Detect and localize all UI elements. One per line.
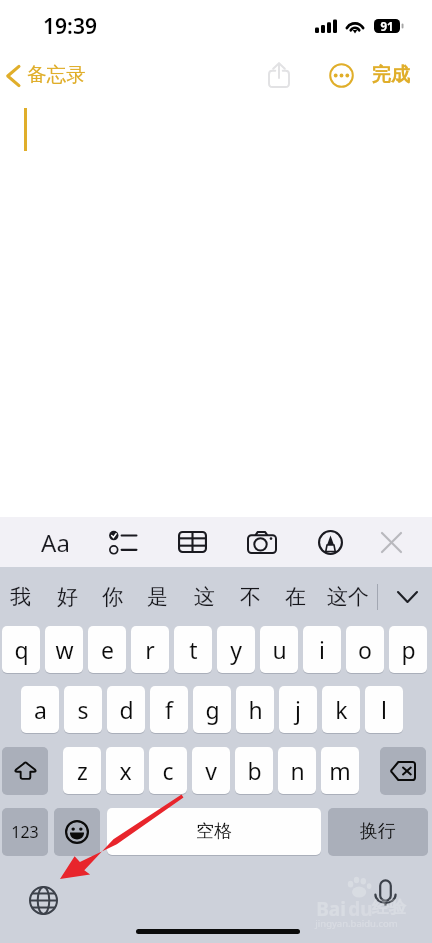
button[interactable]: y [217,626,255,673]
staticText: s [77,694,89,725]
button[interactable]: 完成 [372,55,410,95]
staticText: b [247,755,262,786]
button[interactable]: Globe [23,880,63,920]
button[interactable]: x [106,747,144,794]
staticText: 空格 [196,820,232,843]
button[interactable]: Share [262,58,296,92]
button[interactable]: r [131,626,169,673]
staticText: Aa [41,526,70,559]
button[interactable]: Shift [2,747,48,794]
staticText: du [348,896,373,922]
staticText: h [248,694,263,725]
staticText: 完成 [372,63,410,87]
staticText: d [119,694,134,725]
staticText: v [205,755,217,786]
button[interactable]: n [278,747,316,794]
button[interactable]: 空格 [107,808,321,855]
staticText: w [55,634,74,665]
staticText: 19:39 [43,12,97,41]
staticText: 91 [380,19,394,33]
staticText: 换行 [360,820,396,843]
button[interactable]: Close [367,518,415,566]
staticText: a [34,694,47,725]
button[interactable]: b [235,747,273,794]
button[interactable]: 123 [2,808,48,855]
button[interactable]: k [322,686,360,733]
button[interactable]: 是 [138,575,176,619]
button[interactable]: o [346,626,384,673]
staticText: u [272,634,287,665]
staticText: y [230,634,242,665]
staticText: 不 [240,584,261,610]
staticText: 在 [285,584,306,610]
staticText: jingyan.baidu.com [315,917,398,930]
staticText: 经验 [372,897,406,918]
button[interactable]: Aa [31,518,79,566]
button[interactable]: 在 [276,575,314,619]
button[interactable]: Emoji [54,808,100,855]
button[interactable]: z [63,747,101,794]
staticText: 你 [102,584,123,610]
button[interactable]: t [174,626,212,673]
button[interactable]: u [260,626,298,673]
staticText: p [401,634,416,665]
staticText: o [358,634,372,665]
staticText: 这 [194,584,215,610]
button[interactable]: 备忘录 [4,63,86,88]
staticText: r [145,634,155,665]
button[interactable]: Checklist [99,518,147,566]
button[interactable]: 这 [185,575,223,619]
staticText: z [77,755,88,786]
button[interactable]: 不 [231,575,269,619]
button[interactable]: 你 [93,575,131,619]
button[interactable]: c [149,747,187,794]
staticText: 我 [10,584,31,610]
button[interactable]: q [2,626,40,673]
staticText: x [119,755,132,786]
staticText: 备忘录 [27,62,86,87]
staticText: e [101,634,114,665]
staticText: c [162,755,174,786]
button[interactable]: f [150,686,188,733]
staticText: f [165,694,173,725]
staticText: g [205,694,220,725]
button[interactable]: d [107,686,145,733]
button[interactable]: j [279,686,317,733]
button[interactable]: v [192,747,230,794]
staticText: q [14,634,29,665]
staticText: Bai [316,896,346,922]
button[interactable]: Camera [238,518,286,566]
button[interactable]: Table [168,518,216,566]
button[interactable]: g [193,686,231,733]
button[interactable]: More options [324,58,358,92]
button[interactable]: Microphone [365,876,407,910]
staticText: t [189,634,198,665]
button[interactable]: More candidates [385,575,429,619]
button[interactable]: i [303,626,341,673]
button[interactable]: Markup [306,518,354,566]
button[interactable]: l [365,686,403,733]
staticText: n [290,755,305,786]
button[interactable]: s [64,686,102,733]
staticText: i [319,634,325,665]
staticText: 这个 [327,584,369,610]
staticText: 是 [147,584,168,610]
staticText: k [335,694,348,725]
button[interactable]: 好 [48,575,86,619]
button[interactable]: 这个 [324,575,372,619]
button[interactable]: a [21,686,59,733]
button[interactable]: m [321,747,359,794]
staticText: m [329,755,351,786]
staticText: 好 [57,584,78,610]
staticText: 123 [11,821,39,843]
button[interactable]: h [236,686,274,733]
button[interactable]: e [88,626,126,673]
button[interactable]: w [45,626,83,673]
button[interactable]: p [389,626,427,673]
button[interactable]: 我 [1,575,39,619]
button[interactable]: Backspace [380,747,426,794]
staticText: l [381,694,387,725]
staticText: j [295,694,301,725]
button[interactable]: 换行 [328,808,428,855]
